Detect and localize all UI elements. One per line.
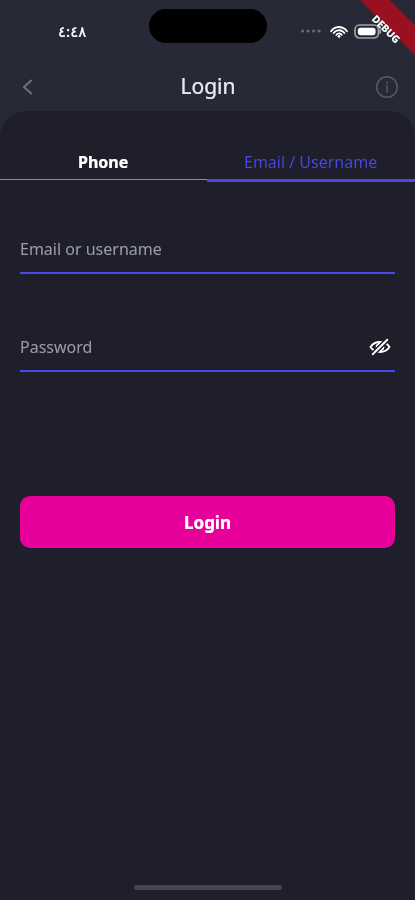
button[interactable]: Login	[20, 496, 395, 548]
button[interactable]: Email or username	[20, 234, 395, 274]
staticText: Phone	[78, 151, 129, 173]
button[interactable]: Phone	[0, 145, 207, 179]
staticText: ٤:٤٨	[58, 21, 87, 41]
button[interactable]: Password	[20, 332, 395, 372]
staticText: Login	[180, 72, 236, 101]
staticText: Email / Username	[244, 151, 378, 173]
button[interactable]: Email / Username	[207, 145, 415, 179]
staticText: Email or username	[20, 238, 162, 260]
staticText: Password	[20, 336, 93, 358]
button[interactable]: Info	[367, 67, 407, 107]
staticText: DEBUG	[369, 12, 404, 46]
button[interactable]: Show password	[365, 332, 395, 362]
staticText: Login	[184, 511, 232, 534]
button[interactable]: Back	[6, 65, 50, 109]
